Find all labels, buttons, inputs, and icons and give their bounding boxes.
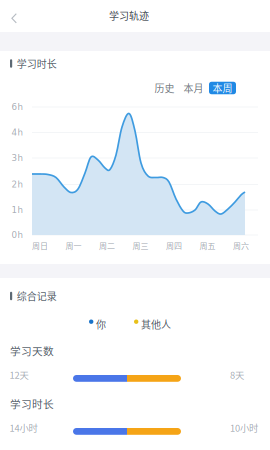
staticText: 周日 (32, 240, 48, 251)
staticText: 学习时长 (17, 56, 57, 71)
staticText: 其他人 (141, 317, 171, 331)
staticText: 8天 (230, 368, 244, 381)
staticText: 6h (11, 102, 22, 112)
staticText: 学习时长 (10, 396, 54, 411)
staticText: 学习天数 (10, 343, 54, 358)
staticText: 综合记录 (17, 289, 57, 303)
staticText: 周六 (233, 240, 249, 251)
staticText: 本月 (183, 81, 203, 95)
staticText: 10小时 (230, 421, 258, 434)
button[interactable]: 历史 (151, 82, 178, 94)
button[interactable]: 本月 (180, 82, 207, 94)
staticText: 12天 (9, 368, 28, 381)
staticText: 周二 (99, 240, 115, 251)
staticText: 周五 (199, 240, 215, 251)
staticText: 14小时 (9, 421, 37, 434)
staticText: 学习轨迹 (109, 8, 149, 23)
staticText: 2h (11, 179, 22, 190)
staticText: 周四 (166, 240, 182, 251)
staticText: 你 (96, 317, 106, 331)
staticText: 0h (11, 230, 22, 240)
staticText: 周一 (65, 240, 81, 251)
staticText: 3h (11, 153, 22, 163)
staticText: 历史 (154, 81, 174, 95)
button[interactable]: Back (0, 0, 30, 32)
staticText: 1h (11, 205, 22, 215)
staticText: 4h (11, 127, 22, 138)
button[interactable]: 本周 (209, 82, 236, 94)
staticText: 本周 (212, 81, 232, 95)
staticText: 周三 (132, 240, 148, 251)
